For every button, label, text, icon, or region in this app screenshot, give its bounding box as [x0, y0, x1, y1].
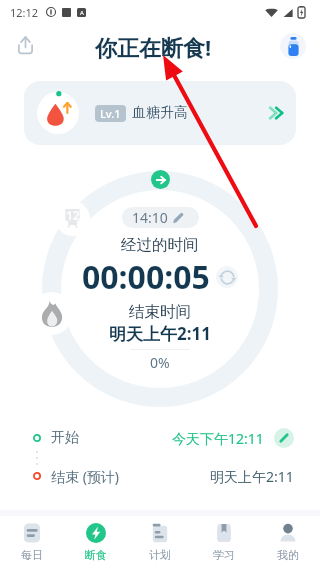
- staticText: Lv.1: [100, 106, 121, 121]
- staticText: 学习: [213, 548, 235, 562]
- staticText: 我的: [277, 548, 299, 562]
- staticText: 14:10: [132, 208, 168, 227]
- staticText: 12: [66, 207, 80, 223]
- staticText: 经过的时间: [121, 235, 199, 255]
- button[interactable]: 开始: [33, 425, 294, 451]
- button[interactable]: Fat burn: [30, 292, 73, 335]
- staticText: 0%: [150, 353, 170, 372]
- staticText: 结束时间: [129, 302, 191, 322]
- staticText: 12:12: [10, 5, 39, 20]
- staticText: 开始: [51, 429, 79, 447]
- button[interactable]: Refresh: [216, 266, 238, 288]
- button[interactable]: Water tracker: [280, 33, 306, 59]
- staticText: 00:00:05: [82, 255, 210, 299]
- button[interactable]: Achievement badge: [55, 201, 90, 236]
- staticText: 明天上午2:11: [109, 322, 211, 345]
- button[interactable]: 计划: [128, 516, 192, 568]
- button[interactable]: 结束 (预计): [33, 465, 294, 487]
- staticText: 血糖升高: [132, 104, 188, 122]
- button[interactable]: 每日: [0, 516, 64, 568]
- staticText: A: [80, 9, 84, 17]
- staticText: 计划: [149, 548, 171, 562]
- button[interactable]: 断食: [64, 516, 128, 568]
- button[interactable]: 我的: [256, 516, 320, 568]
- button[interactable]: Edit start time: [274, 428, 294, 448]
- button[interactable]: Share: [8, 28, 42, 62]
- button[interactable]: Start fasting: [151, 170, 170, 189]
- staticText: 每日: [21, 548, 43, 562]
- staticText: 结束 (预计): [51, 467, 120, 486]
- button[interactable]: 14:10: [132, 207, 184, 228]
- staticText: 你正在断食!: [95, 32, 212, 62]
- staticText: 明天上午2:11: [210, 467, 294, 486]
- button[interactable]: Lv.1: [24, 81, 296, 145]
- button[interactable]: 学习: [192, 516, 256, 568]
- staticText: 断食: [85, 548, 107, 562]
- staticText: 今天下午12:11: [172, 429, 264, 448]
